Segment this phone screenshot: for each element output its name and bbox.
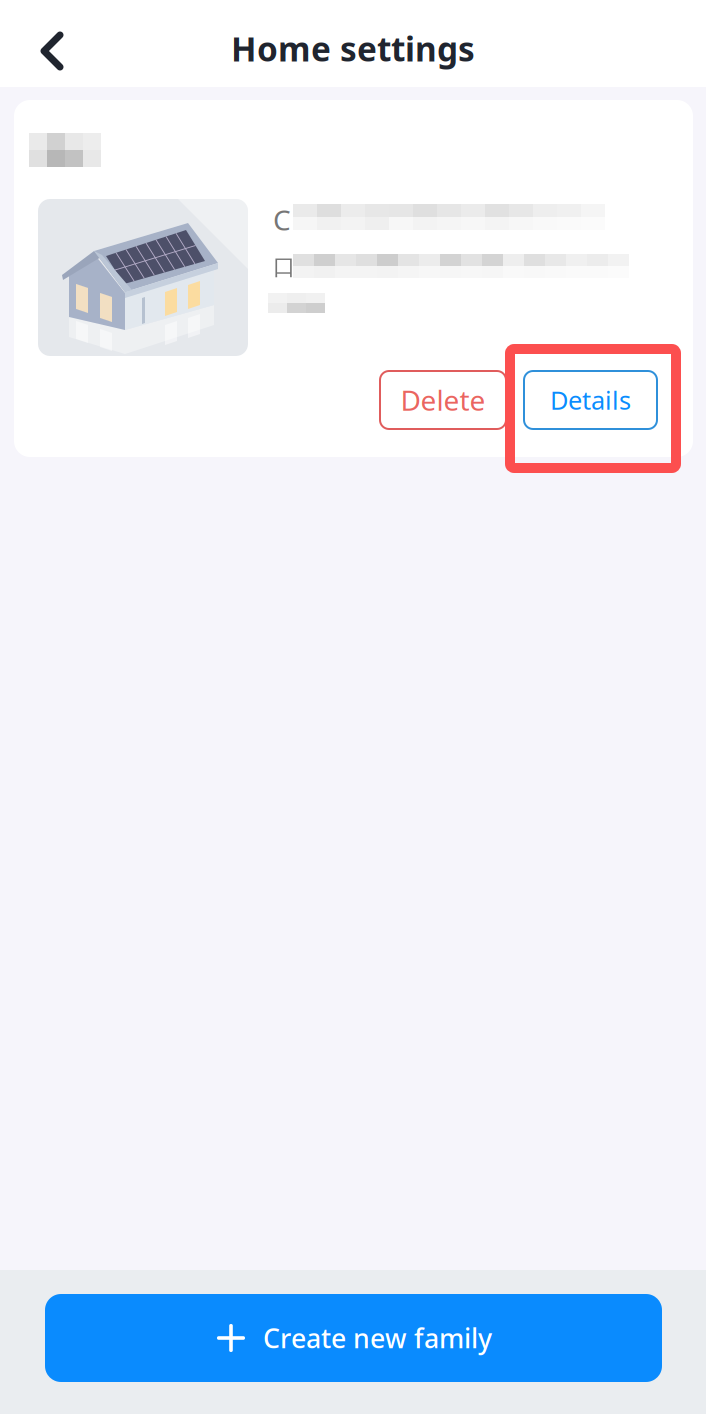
staticText: Home settings bbox=[231, 26, 475, 71]
staticText: 口 bbox=[273, 253, 296, 281]
staticText: Delete bbox=[400, 381, 485, 419]
staticText: Create new family bbox=[263, 1320, 492, 1356]
button[interactable]: Back bbox=[16, 13, 88, 89]
staticText: Details bbox=[550, 383, 631, 417]
button[interactable]: Details bbox=[524, 371, 657, 429]
staticText: C bbox=[273, 201, 291, 238]
button[interactable]: Delete bbox=[380, 371, 506, 429]
button[interactable]: Create new family bbox=[45, 1294, 662, 1382]
